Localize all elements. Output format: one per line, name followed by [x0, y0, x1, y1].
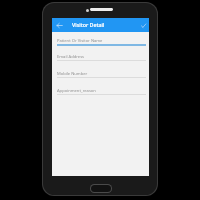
button[interactable]: Email Address	[52, 54, 149, 64]
staticText: Email Address	[57, 54, 85, 60]
button[interactable]: Mobile Number	[52, 71, 149, 81]
button[interactable]: Back	[52, 18, 66, 32]
staticText: Mobile Number	[57, 71, 88, 77]
button[interactable]: Patient Or Visitor Name	[52, 38, 149, 48]
button[interactable]: Appoinment_reason	[52, 88, 149, 98]
staticText: Appoinment_reason	[57, 88, 96, 94]
button[interactable]: Home	[91, 185, 111, 192]
button[interactable]: Save	[138, 18, 149, 32]
staticText: Visitor Detail	[72, 21, 105, 28]
staticText: Patient Or Visitor Name	[57, 38, 103, 44]
